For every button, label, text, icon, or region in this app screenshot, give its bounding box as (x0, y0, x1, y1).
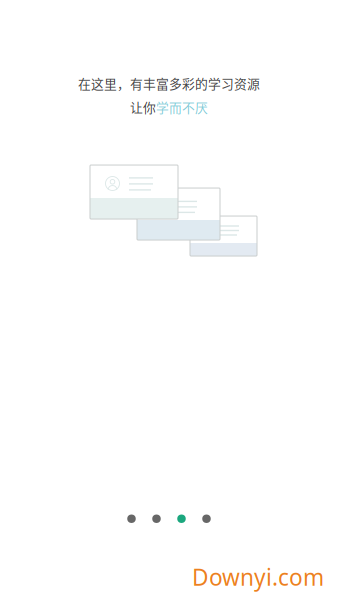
staticText: 在这里，有丰富多彩的学习资源 (78, 74, 260, 92)
staticText: 学而不厌 (156, 97, 208, 116)
staticText: Downyi.com (192, 562, 324, 592)
button[interactable]: Page 3, current page (177, 514, 186, 523)
button[interactable]: Page 4 (202, 514, 211, 523)
staticText: 让你 (130, 97, 156, 116)
button[interactable]: Page 2 (152, 514, 161, 523)
button[interactable]: Page 1 (127, 514, 136, 523)
